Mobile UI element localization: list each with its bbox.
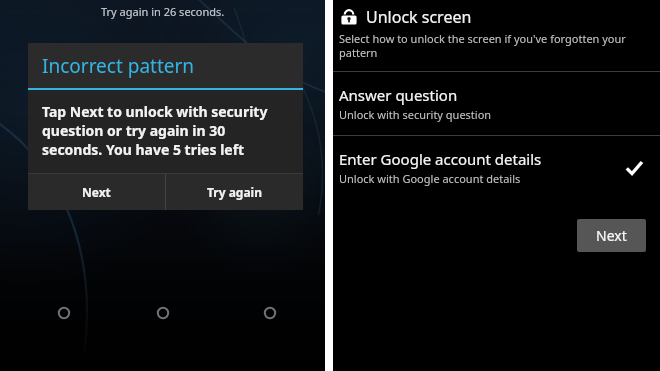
staticText: Try again in 26 seconds. — [101, 4, 225, 19]
staticText: Unlock screen — [366, 6, 472, 28]
staticText: Unlock with security question — [339, 107, 492, 122]
button[interactable]: Try again — [166, 174, 303, 210]
staticText: Next — [82, 184, 111, 200]
staticText: Tap Next to unlock with security questio… — [42, 102, 287, 159]
staticText: Select how to unlock the screen if you'v… — [339, 31, 654, 60]
button[interactable]: Enter Google account details — [333, 136, 660, 199]
staticText: Try again — [207, 184, 263, 200]
button[interactable]: Answer question — [333, 72, 660, 135]
other: Selected — [624, 158, 644, 178]
staticText: Incorrect pattern — [42, 53, 195, 79]
staticText: Answer question — [339, 85, 458, 105]
button[interactable]: Next — [28, 174, 165, 210]
staticText: Unlock with Google account details — [339, 171, 521, 186]
staticText: Next — [596, 226, 627, 245]
staticText: Enter Google account details — [339, 149, 542, 169]
button[interactable]: Next — [577, 219, 646, 252]
other: Lock — [339, 7, 359, 27]
